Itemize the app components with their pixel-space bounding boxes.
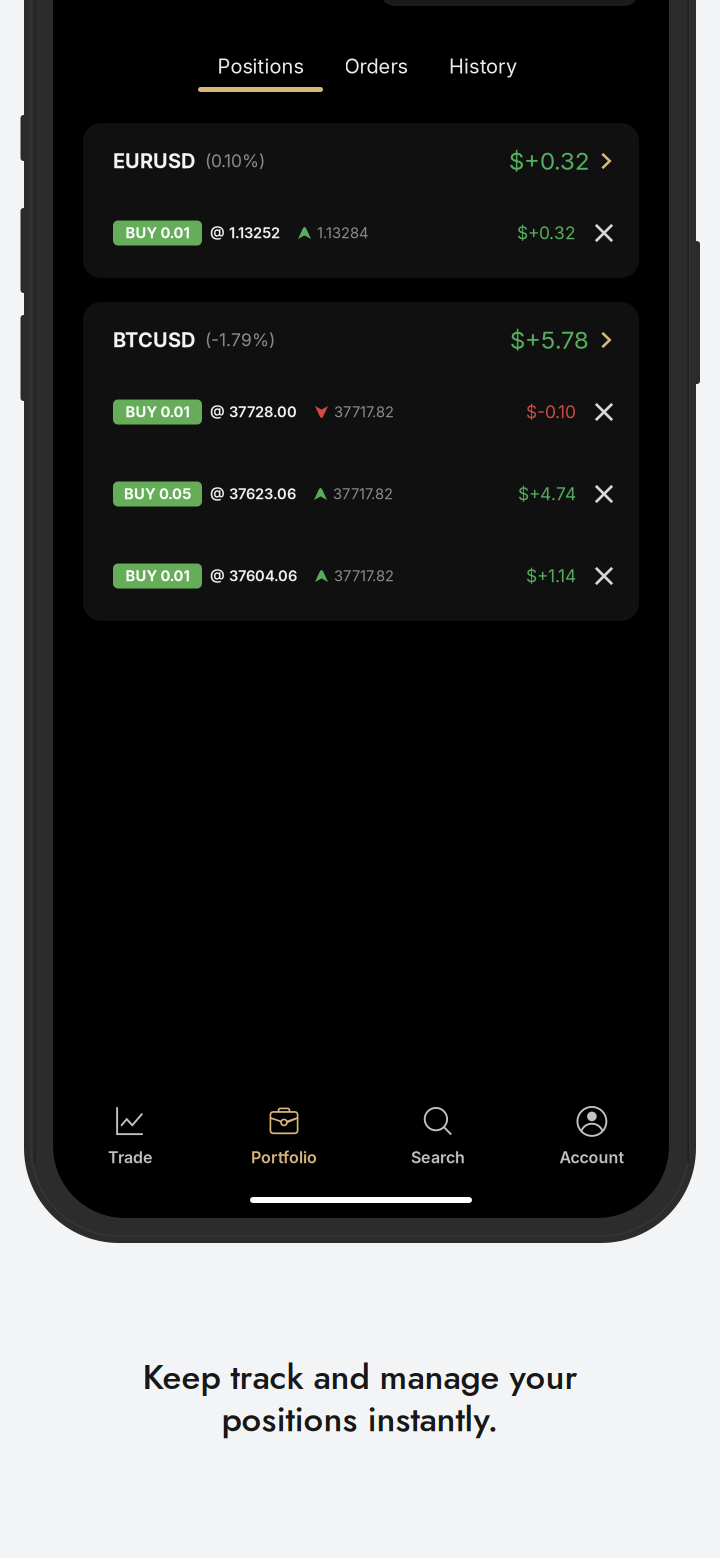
staticText: Search (411, 1148, 465, 1167)
staticText: $+1.14 (526, 565, 576, 586)
staticText: Keep track and manage your (142, 1352, 577, 1402)
button[interactable]: EURUSD (83, 123, 639, 192)
button[interactable]: Close position (583, 212, 625, 254)
button[interactable]: Portfolio (207, 1100, 361, 1172)
staticText: $+0.32 (517, 222, 576, 243)
staticText: @ 1.13252 (210, 224, 280, 242)
staticText: Orders (344, 54, 407, 78)
staticText: BUY 0.01 (125, 567, 189, 585)
staticText: (0.10%) (205, 150, 265, 171)
staticText: Account (559, 1148, 624, 1167)
staticText: 37717.82 (334, 403, 394, 421)
staticText: $+0.32 (509, 146, 589, 175)
staticText: $+4.74 (518, 483, 576, 504)
staticText: 37717.82 (333, 485, 393, 503)
button[interactable]: Close position (583, 391, 625, 433)
button[interactable]: Search (361, 1100, 515, 1172)
staticText: 1.13284 (317, 224, 368, 242)
button[interactable]: Close position (583, 555, 625, 597)
staticText: $-0.10 (526, 401, 576, 422)
staticText: positions instantly. (221, 1394, 498, 1444)
staticText: BUY 0.01 (125, 224, 189, 242)
staticText: (-1.79%) (205, 329, 275, 350)
staticText: @ 37604.06 (210, 567, 297, 585)
button[interactable]: BTCUSD (83, 302, 639, 371)
button[interactable]: Close position (583, 473, 625, 515)
staticText: BTCUSD (113, 328, 195, 352)
button[interactable]: Positions (195, 53, 325, 92)
staticText: Trade (108, 1148, 152, 1167)
staticText: @ 37623.06 (210, 485, 296, 503)
staticText: $+5.78 (510, 325, 589, 354)
staticText: Portfolio (251, 1148, 317, 1167)
staticText: 37717.82 (334, 567, 394, 585)
staticText: BUY 0.01 (125, 403, 189, 421)
button[interactable]: History (418, 53, 548, 92)
staticText: History (449, 54, 517, 78)
staticText: Positions (217, 54, 303, 78)
button[interactable]: Orders (311, 53, 441, 92)
staticText: EURUSD (113, 149, 195, 173)
staticText: BUY 0.05 (124, 485, 191, 503)
staticText: @ 37728.00 (210, 403, 297, 421)
button[interactable]: Trade (53, 1100, 207, 1172)
button[interactable]: Account (515, 1100, 669, 1172)
